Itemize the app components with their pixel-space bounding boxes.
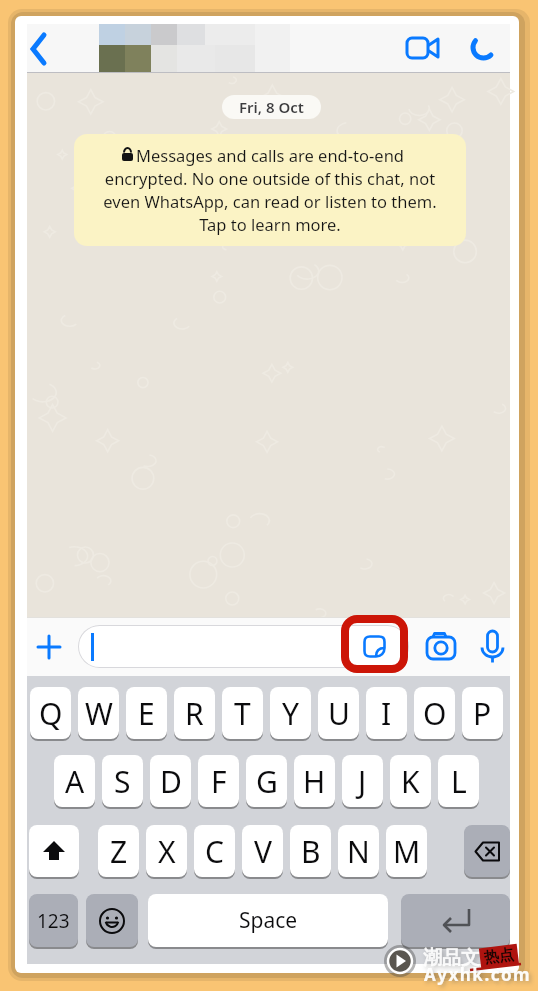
staticText: O — [423, 693, 447, 734]
button[interactable]: Q — [30, 687, 71, 741]
button[interactable]: Space — [148, 894, 388, 949]
staticText: B — [301, 831, 321, 872]
button[interactable]: 123 — [29, 894, 78, 949]
staticText: Messages and calls are end-to-end encryp… — [103, 144, 437, 236]
staticText: D — [160, 761, 182, 802]
staticText: Ayxhk.com — [424, 963, 532, 986]
button[interactable]: O — [414, 687, 455, 741]
staticText: E — [138, 693, 155, 734]
button[interactable]: G — [246, 755, 287, 809]
staticText: W — [85, 693, 113, 734]
button[interactable]: Z — [98, 825, 139, 879]
staticText: C — [205, 831, 224, 872]
staticText: G — [256, 761, 278, 802]
button[interactable]: I — [366, 687, 407, 741]
button[interactable]: T — [222, 687, 263, 741]
staticText: S — [114, 761, 131, 802]
staticText: J — [358, 761, 367, 802]
button[interactable]: V — [242, 825, 283, 879]
button[interactable]: L — [438, 755, 479, 809]
staticText: A — [65, 761, 85, 802]
button[interactable]: B — [290, 825, 331, 879]
button[interactable]: W — [78, 687, 119, 741]
button[interactable] — [29, 825, 79, 879]
staticText: I — [381, 693, 392, 734]
staticText: V — [254, 831, 272, 872]
button[interactable] — [401, 894, 510, 949]
button[interactable]: H — [294, 755, 335, 809]
button[interactable] — [425, 630, 457, 662]
staticText: K — [401, 761, 420, 802]
button[interactable] — [405, 35, 441, 61]
button[interactable] — [464, 825, 510, 879]
staticText: 潮品文 — [423, 946, 480, 970]
staticText: T — [234, 693, 251, 734]
button[interactable] — [480, 629, 505, 665]
button[interactable]: E — [126, 687, 167, 741]
button[interactable]: C — [194, 825, 235, 879]
staticText: P — [473, 693, 492, 734]
button[interactable]: R — [174, 687, 215, 741]
button[interactable] — [86, 894, 138, 949]
button[interactable]: D — [150, 755, 191, 809]
button[interactable]: U — [318, 687, 359, 741]
staticText: R — [185, 693, 204, 734]
staticText: 123 — [37, 908, 70, 934]
staticText: U — [328, 693, 350, 734]
staticText: X — [158, 831, 176, 872]
button[interactable]: X — [146, 825, 187, 879]
button[interactable]: A — [54, 755, 95, 809]
button[interactable]: Y — [270, 687, 311, 741]
button[interactable] — [363, 635, 387, 659]
button[interactable] — [78, 625, 409, 668]
staticText: Fri, 8 Oct — [239, 97, 304, 117]
button[interactable]: P — [462, 687, 503, 741]
button[interactable]: F — [198, 755, 239, 809]
staticText: Space — [239, 906, 298, 935]
button[interactable]: J — [342, 755, 383, 809]
staticText: Q — [39, 693, 63, 734]
button[interactable]: M — [386, 825, 427, 879]
staticText: F — [211, 761, 227, 802]
staticText: 热点 — [483, 945, 515, 968]
button[interactable]: S — [102, 755, 143, 809]
button[interactable]: Messages and calls are end-to-end encryp… — [74, 134, 466, 246]
staticText: N — [347, 831, 370, 872]
staticText: M — [393, 831, 421, 872]
button[interactable] — [470, 33, 498, 63]
staticText: Y — [282, 693, 299, 734]
button[interactable]: K — [390, 755, 431, 809]
button[interactable]: N — [338, 825, 379, 879]
staticText: Z — [110, 831, 128, 872]
button[interactable] — [28, 32, 52, 66]
staticText: H — [303, 761, 326, 802]
button[interactable] — [37, 635, 61, 659]
staticText: L — [451, 761, 467, 802]
